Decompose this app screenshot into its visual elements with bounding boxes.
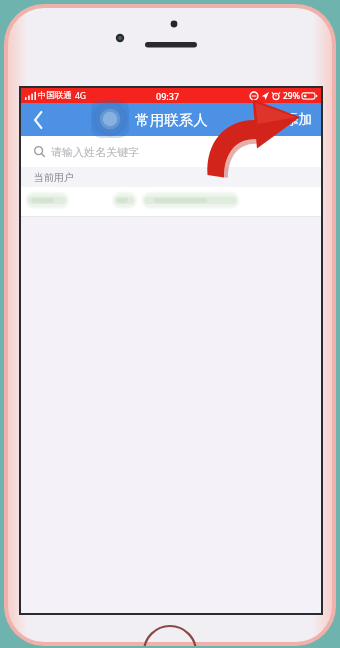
staticText: 请输入姓名关键字 <box>51 145 139 159</box>
staticText: 当前用户 <box>34 171 74 184</box>
button[interactable] <box>21 187 321 216</box>
button[interactable]: 添加 <box>276 103 321 136</box>
staticText: 添加 <box>285 111 312 128</box>
staticText: 29% <box>283 90 300 102</box>
staticText: 4G <box>75 90 87 102</box>
staticText: 常用联系人 <box>135 111 208 129</box>
staticText: 中国联通 <box>38 90 72 101</box>
staticText: 09:37 <box>156 90 180 102</box>
button[interactable]: 请输入姓名关键字 <box>21 136 321 167</box>
button[interactable]: 返回 <box>21 103 55 136</box>
